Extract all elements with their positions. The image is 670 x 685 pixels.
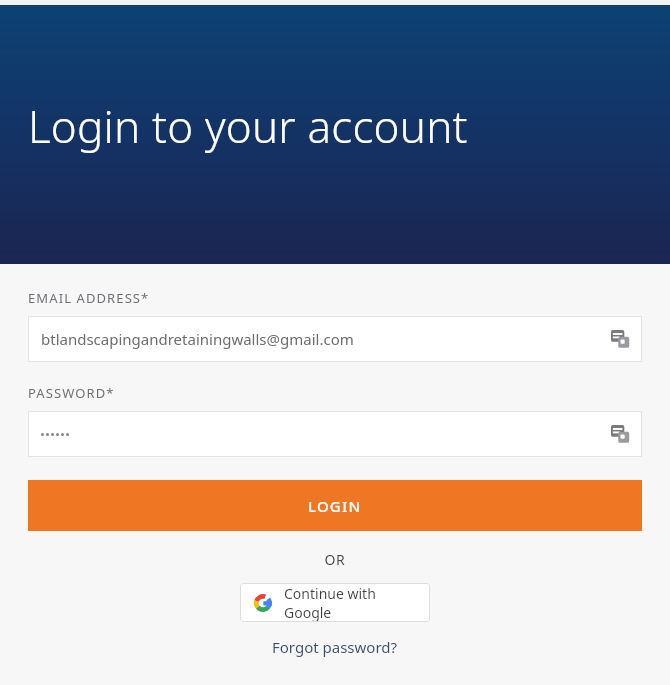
- button[interactable]: Forgot password?: [266, 634, 404, 660]
- button[interactable]: btlandscapingandretainingwalls@gmail.com: [28, 316, 642, 362]
- staticText: Forgot password?: [272, 637, 398, 657]
- staticText: PASSWORD*: [28, 384, 115, 402]
- staticText: EMAIL ADDRESS*: [28, 289, 150, 307]
- staticText: btlandscapingandretainingwalls@gmail.com: [41, 329, 354, 349]
- button[interactable]: Autofill saved password: [28, 411, 642, 457]
- button[interactable]: LOGIN: [28, 480, 642, 531]
- other: Autofill saved password: [611, 425, 630, 444]
- staticText: Continue with Google: [284, 584, 416, 622]
- staticText: LOGIN: [308, 496, 362, 516]
- button[interactable]: Continue with Google: [240, 583, 430, 622]
- staticText: Login to your account: [28, 96, 468, 156]
- staticText: OR: [28, 550, 642, 569]
- other: Autofill saved password: [611, 330, 630, 349]
